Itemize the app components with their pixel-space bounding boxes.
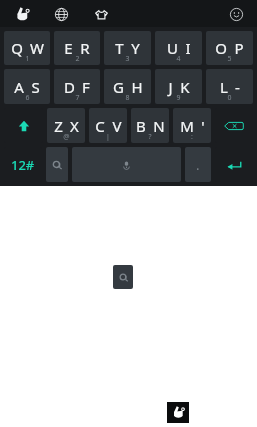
button[interactable]: M — [173, 108, 211, 143]
button[interactable]: Gesture input — [9, 1, 35, 27]
staticText: C — [95, 116, 105, 136]
staticText: P — [234, 38, 244, 58]
staticText: . — [196, 156, 200, 174]
button[interactable]: Q — [4, 31, 50, 65]
staticText: H — [131, 77, 143, 97]
staticText: Q — [11, 38, 23, 58]
staticText: E — [64, 38, 73, 58]
staticText: I — [185, 38, 191, 58]
button[interactable]: O — [206, 31, 253, 65]
button[interactable]: 12# — [4, 147, 42, 182]
staticText: 12# — [11, 156, 35, 174]
staticText: X — [70, 116, 79, 136]
button[interactable]: A — [4, 69, 50, 104]
button[interactable]: G — [104, 69, 151, 104]
staticText: U — [167, 38, 178, 58]
staticText: T — [115, 38, 124, 58]
staticText: 4 — [176, 54, 181, 64]
staticText: 3 — [125, 54, 130, 64]
staticText: M — [180, 116, 194, 136]
staticText: L — [220, 77, 228, 97]
staticText: 1 — [25, 54, 30, 64]
button[interactable]: J — [155, 69, 202, 104]
button[interactable]: D — [54, 69, 100, 104]
button[interactable]: Theme — [88, 1, 114, 27]
staticText: @ — [63, 132, 70, 142]
staticText: S — [31, 77, 40, 97]
staticText: A — [14, 77, 24, 97]
button[interactable]: Letters — [113, 265, 133, 289]
button[interactable]: Emoji — [223, 1, 249, 27]
staticText: 6 — [25, 93, 30, 103]
staticText: W — [30, 38, 44, 58]
button[interactable]: Language — [48, 1, 74, 27]
button[interactable]: E — [54, 31, 100, 65]
button[interactable]: C — [89, 108, 127, 143]
staticText: 8 — [125, 93, 130, 103]
staticText: G — [113, 77, 124, 97]
button[interactable]: B — [131, 108, 169, 143]
staticText: Y — [131, 38, 140, 58]
button[interactable]: Enter — [215, 147, 253, 182]
staticText: D — [64, 77, 75, 97]
staticText: : — [191, 132, 193, 142]
button[interactable]: Gesture input — [167, 402, 189, 423]
staticText: F — [82, 77, 90, 97]
staticText: B — [136, 116, 146, 136]
button[interactable]: L — [206, 69, 253, 104]
staticText: - — [235, 77, 240, 97]
staticText: Z — [54, 116, 63, 136]
staticText: K — [180, 77, 190, 97]
staticText: ? — [148, 132, 152, 142]
staticText: J — [168, 77, 173, 97]
button[interactable]: Space — [72, 147, 181, 182]
button[interactable]: Shift — [4, 108, 43, 143]
staticText: | — [106, 132, 110, 142]
staticText: 0 — [227, 93, 232, 103]
staticText: ' — [201, 116, 205, 136]
staticText: O — [215, 38, 227, 58]
staticText: 9 — [176, 93, 181, 103]
staticText: V — [112, 116, 122, 136]
staticText: N — [153, 116, 165, 136]
staticText: 2 — [75, 54, 80, 64]
button[interactable]: U — [155, 31, 202, 65]
staticText: 5 — [227, 54, 232, 64]
button[interactable]: Z — [47, 108, 85, 143]
button[interactable]: Letters — [46, 147, 68, 182]
button[interactable]: . — [185, 147, 211, 182]
button[interactable]: T — [104, 31, 151, 65]
button[interactable]: Backspace — [215, 108, 253, 143]
staticText: R — [80, 38, 90, 58]
staticText: 7 — [75, 93, 80, 103]
